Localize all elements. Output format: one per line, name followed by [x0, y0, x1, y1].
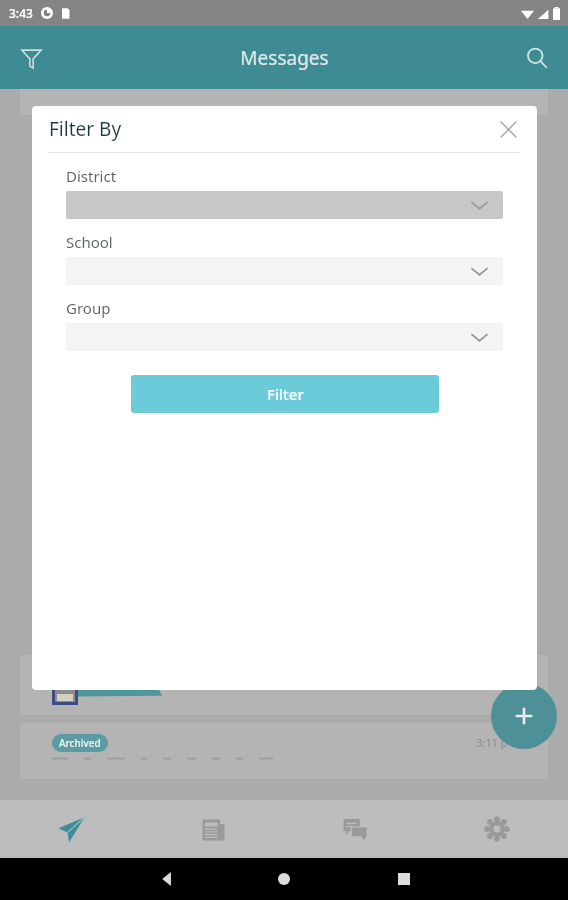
staticText: School	[66, 232, 113, 252]
button[interactable]	[20, 723, 548, 779]
staticText: Filter By	[49, 116, 122, 142]
button[interactable]: Home	[267, 862, 301, 896]
button[interactable]: Close	[491, 112, 525, 146]
button[interactable]: Newsletters	[142, 800, 284, 858]
button[interactable]: Back	[150, 862, 184, 896]
staticText: District	[66, 166, 117, 186]
button[interactable]	[20, 655, 548, 715]
staticText: Messages	[240, 45, 329, 71]
staticText: Filter	[267, 384, 304, 404]
button[interactable]: Filter	[131, 375, 439, 413]
staticText: Group	[66, 298, 111, 318]
button[interactable]: Send	[0, 800, 142, 858]
staticText: 3:11 p	[476, 735, 508, 750]
button[interactable]: New message	[491, 683, 557, 749]
button[interactable]: Chat	[284, 800, 426, 858]
staticText: 3:43	[9, 5, 33, 21]
button[interactable]: Filter	[10, 37, 52, 79]
button[interactable]: Recents	[387, 862, 421, 896]
staticText: All Students	[172, 677, 228, 691]
button[interactable]: School dropdown	[66, 257, 503, 285]
button[interactable]: Group dropdown	[66, 323, 503, 351]
staticText: Archived	[59, 736, 101, 750]
button[interactable]: Search	[516, 37, 558, 79]
button[interactable]: Settings	[426, 800, 568, 858]
